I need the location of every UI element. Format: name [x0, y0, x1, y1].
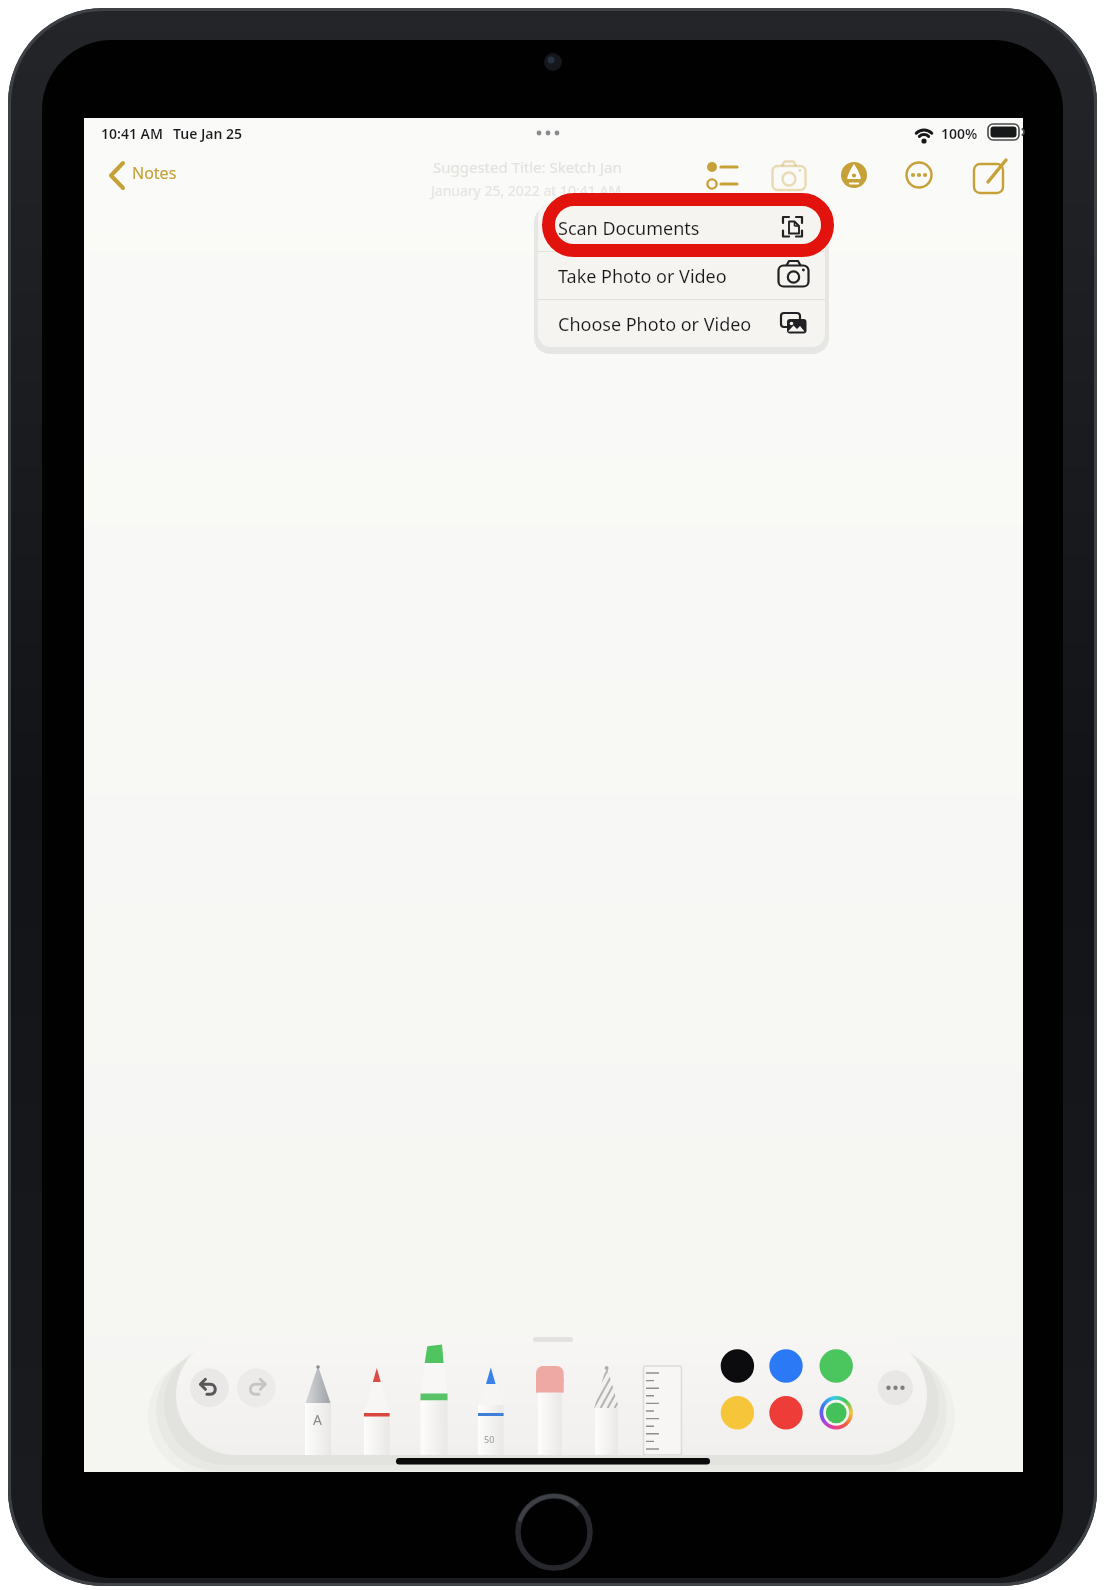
staticText: 50 [484, 1433, 495, 1445]
button[interactable] [538, 203, 825, 251]
button[interactable] [771, 157, 807, 193]
button[interactable] [720, 1349, 754, 1383]
staticText: Scan Documents [558, 216, 700, 241]
button[interactable] [901, 157, 937, 193]
button[interactable] [769, 1396, 803, 1430]
button[interactable] [305, 1365, 335, 1455]
button[interactable] [419, 1365, 449, 1455]
button[interactable] [476, 1365, 506, 1455]
staticText: Choose Photo or Video [558, 312, 752, 337]
button[interactable] [769, 1349, 803, 1383]
staticText: Notes [132, 162, 177, 184]
staticText: A [313, 1410, 322, 1429]
staticText: 100% [941, 124, 978, 143]
button[interactable] [878, 1370, 913, 1405]
staticText: January 25, 2022 at 10:41 AM [431, 181, 622, 200]
button[interactable] [237, 1371, 276, 1410]
staticText: Take Photo or Video [558, 264, 727, 289]
button[interactable] [191, 1371, 230, 1410]
button[interactable] [818, 1349, 852, 1383]
button[interactable] [538, 299, 825, 347]
button[interactable] [970, 157, 1006, 193]
button[interactable] [100, 155, 195, 195]
button[interactable] [538, 251, 825, 299]
button[interactable] [647, 1365, 677, 1455]
button[interactable] [590, 1365, 620, 1455]
staticText: Suggested Title: Sketch Jan [433, 157, 622, 177]
staticText: Tue Jan 25 [173, 124, 243, 143]
button[interactable] [694, 157, 730, 193]
button[interactable] [720, 1396, 754, 1430]
button[interactable] [362, 1365, 392, 1455]
button[interactable] [836, 157, 872, 193]
staticText: 10:41 AM [101, 124, 163, 143]
button[interactable] [533, 1365, 563, 1455]
button[interactable] [818, 1396, 852, 1430]
